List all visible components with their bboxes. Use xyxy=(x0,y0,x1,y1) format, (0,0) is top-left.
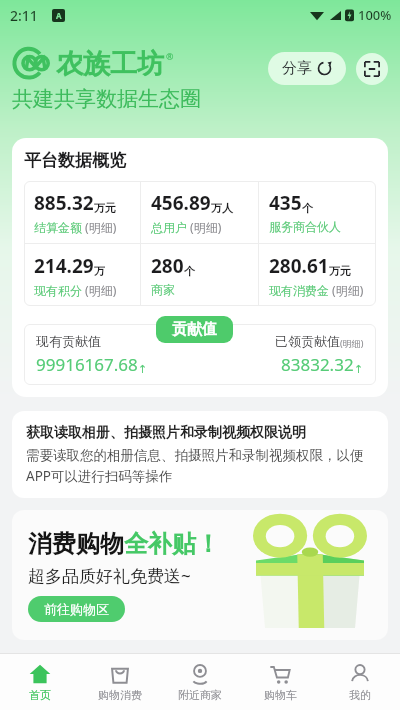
button[interactable]: 首页 xyxy=(0,654,80,710)
button[interactable]: 280.61 xyxy=(259,244,376,306)
staticText: 现有消费金 xyxy=(269,283,329,298)
button[interactable]: 280 xyxy=(141,244,258,306)
staticText: 我的 xyxy=(349,688,371,702)
staticText: 万人 xyxy=(211,201,233,215)
staticText: ↑ xyxy=(138,363,148,376)
button[interactable]: 消费购物 xyxy=(12,510,388,640)
button[interactable]: 贡献值 xyxy=(156,316,233,343)
staticText: 83832.32 xyxy=(281,353,354,376)
button[interactable]: 附近商家 xyxy=(160,654,240,710)
staticText: 首页 xyxy=(29,688,51,702)
staticText: (明细) xyxy=(82,282,117,298)
staticText: ® xyxy=(166,50,174,62)
button[interactable]: 购物消费 xyxy=(80,654,160,710)
staticText: 共建共享数据生态圈 xyxy=(12,86,201,112)
staticText: (明细) xyxy=(187,219,222,235)
staticText: 100% xyxy=(358,6,392,24)
staticText: (明细) xyxy=(82,219,117,235)
staticText: 已领贡献值 xyxy=(275,333,340,349)
button[interactable]: Scan xyxy=(356,53,388,85)
button[interactable]: 456.89 xyxy=(141,181,258,243)
staticText: 现有贡献值 xyxy=(36,333,101,349)
staticText: 服务商合伙人 xyxy=(269,219,341,234)
staticText: 消费购物 xyxy=(28,529,124,559)
staticText: 获取读取相册、拍摄照片和录制视频权限说明 xyxy=(26,424,306,442)
staticText: 农族工坊 xyxy=(56,47,164,81)
button[interactable]: 已领贡献值 xyxy=(200,333,364,376)
staticText: 280 xyxy=(151,253,184,279)
button[interactable]: 购物车 xyxy=(240,654,320,710)
staticText: 456.89 xyxy=(151,190,211,216)
staticText: 万 xyxy=(94,264,105,278)
staticText: 商家 xyxy=(151,282,175,297)
staticText: 2:11 xyxy=(10,6,38,25)
staticText: 平台数据概览 xyxy=(24,150,126,171)
staticText: 280.61 xyxy=(269,253,329,279)
button[interactable]: 我的 xyxy=(320,654,400,710)
staticText: (明细) xyxy=(340,337,364,349)
staticText: 附近商家 xyxy=(178,688,222,702)
staticText: 万元 xyxy=(94,201,116,215)
staticText: 购物车 xyxy=(264,688,297,702)
staticText: 214.29 xyxy=(34,253,94,279)
staticText: 万元 xyxy=(329,264,351,278)
staticText: 全补贴！ xyxy=(124,529,220,559)
button[interactable]: 435 xyxy=(259,181,376,243)
staticText: 前往购物区 xyxy=(44,601,109,617)
button[interactable]: 前往购物区 xyxy=(28,596,125,622)
staticText: 总用户 xyxy=(151,220,187,235)
button[interactable]: 214.29 xyxy=(24,244,140,306)
staticText: 435 xyxy=(269,190,302,216)
button[interactable]: 分享 xyxy=(268,52,346,85)
staticText: 885.32 xyxy=(34,190,94,216)
staticText: 个 xyxy=(184,264,195,278)
staticText: 个 xyxy=(302,201,313,215)
staticText: 分享 xyxy=(282,59,312,78)
staticText: 结算金额 xyxy=(34,220,82,235)
staticText: 现有积分 xyxy=(34,283,82,298)
staticText: A xyxy=(56,10,62,21)
staticText: 需要读取您的相册信息、拍摄照片和录制视频权限，以便APP可以进行扫码等操作 xyxy=(26,447,374,485)
button[interactable]: 现有贡献值 xyxy=(36,333,200,376)
staticText: 贡献值 xyxy=(172,320,217,339)
staticText: (明细) xyxy=(329,282,364,298)
staticText: 购物消费 xyxy=(98,688,142,702)
staticText: ↑ xyxy=(354,363,364,376)
staticText: 99916167.68 xyxy=(36,353,138,376)
button[interactable]: 885.32 xyxy=(24,181,140,243)
staticText: 超多品质好礼免费送~ xyxy=(28,564,191,587)
